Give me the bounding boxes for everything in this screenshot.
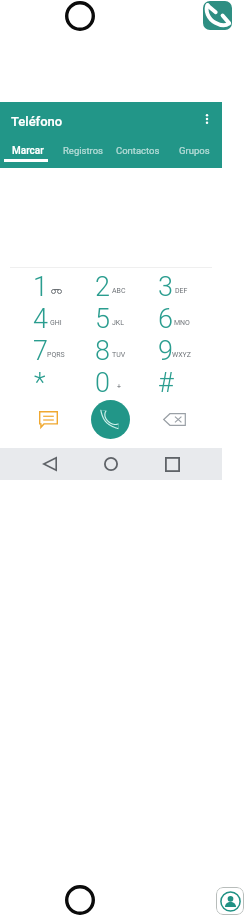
button[interactable]: Call [91, 400, 130, 439]
staticText: JKL [112, 319, 125, 327]
button[interactable]: # [142, 367, 205, 399]
staticText: MNO [174, 319, 190, 327]
staticText: DEF [175, 287, 188, 295]
staticText: * [34, 367, 46, 399]
staticText: GHI [50, 319, 62, 327]
button[interactable]: 1 [17, 271, 79, 303]
button[interactable]: More options [197, 109, 217, 129]
button[interactable]: 5 [79, 303, 142, 335]
button[interactable]: Back [38, 452, 62, 476]
staticText: 5 [95, 303, 110, 335]
staticText: Teléfono [11, 114, 63, 129]
staticText: 3 [158, 271, 173, 303]
staticText: 6 [158, 303, 173, 335]
staticText: WXYZ [172, 351, 191, 359]
button[interactable]: 0 [79, 367, 142, 399]
staticText: ABC [112, 287, 126, 295]
button[interactable]: Contacts app [216, 887, 244, 915]
button[interactable]: Recent apps [160, 452, 184, 476]
staticText: + [117, 383, 121, 391]
button[interactable]: 6 [142, 303, 205, 335]
staticText: 7 [33, 335, 48, 367]
button[interactable]: 8 [79, 335, 142, 367]
staticText: Grupos [179, 145, 210, 156]
staticText: 0 [95, 367, 110, 399]
staticText: TUV [112, 351, 126, 359]
staticText: Contactos [116, 145, 160, 156]
staticText: Registros [63, 145, 103, 156]
button[interactable]: Phone app [203, 1, 232, 30]
staticText: 2 [95, 271, 110, 303]
staticText: 8 [95, 335, 110, 367]
button[interactable]: Backspace [159, 404, 189, 434]
button[interactable]: 2 [79, 271, 142, 303]
button[interactable]: 9 [142, 335, 205, 367]
staticText: 9 [158, 335, 173, 367]
button[interactable]: Home [99, 452, 123, 476]
button[interactable]: 4 [17, 303, 79, 335]
button[interactable]: 7 [17, 335, 79, 367]
staticText: PQRS [47, 351, 65, 359]
staticText: 1 [33, 271, 48, 303]
staticText: Marcar [12, 145, 44, 157]
button[interactable]: Send message [33, 404, 63, 434]
staticText: 4 [33, 303, 48, 335]
button[interactable]: * [17, 367, 79, 399]
staticText: # [158, 367, 174, 399]
button[interactable]: 3 [142, 271, 205, 303]
